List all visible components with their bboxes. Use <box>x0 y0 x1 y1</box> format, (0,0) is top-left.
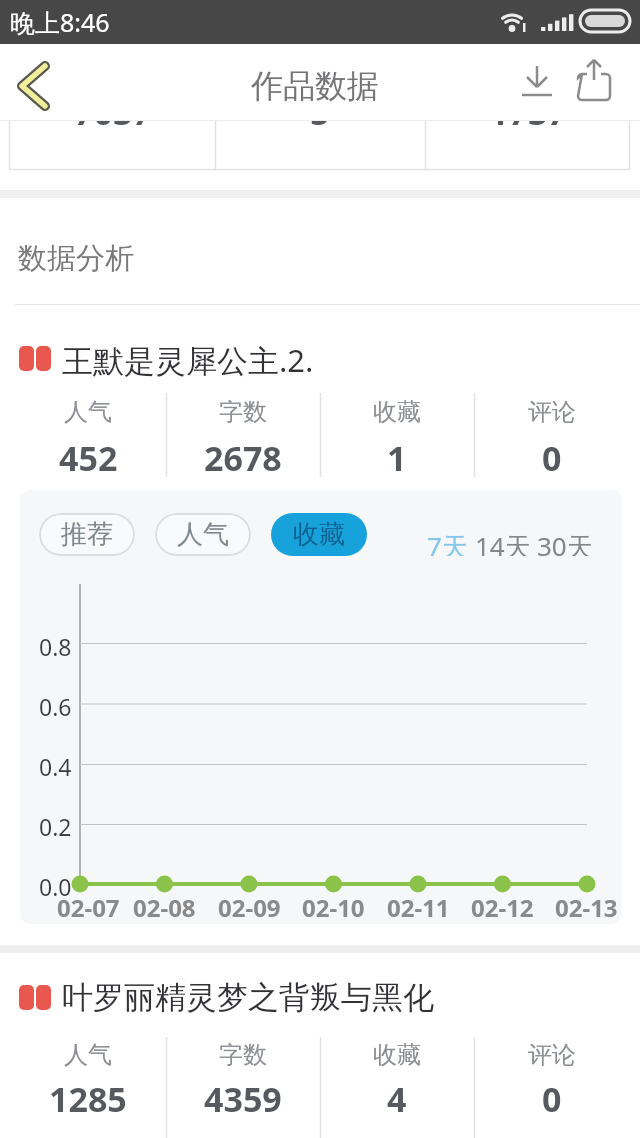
staticText: 字数 <box>219 1040 267 1068</box>
staticText: 0 <box>542 435 562 475</box>
staticText: 0.2 <box>39 811 72 837</box>
staticText: 字数 <box>219 397 267 425</box>
staticText: 0.8 <box>39 631 72 657</box>
staticText: 02-09 <box>218 891 281 917</box>
staticText: 7037 <box>74 89 152 129</box>
button[interactable] <box>0 54 70 114</box>
staticText: 评论 <box>528 397 576 425</box>
staticText: 4 <box>387 1076 407 1116</box>
staticText: 4359 <box>204 1076 282 1116</box>
button[interactable]: 14天 <box>468 528 538 556</box>
staticText: 1737 <box>489 89 567 129</box>
staticText: 作品数据 <box>251 66 379 106</box>
staticText: 叶罗丽精灵梦之背叛与黑化 <box>62 978 434 1016</box>
staticText: 02-11 <box>387 891 450 917</box>
button[interactable] <box>515 60 559 106</box>
staticText: 推荐 <box>61 518 113 551</box>
staticText: 0 <box>542 1076 562 1116</box>
staticText: 王默是灵犀公主.2. <box>62 339 314 377</box>
button[interactable]: 30天 <box>530 528 600 556</box>
staticText: 0.6 <box>39 691 72 717</box>
staticText: 人气 <box>64 1040 112 1068</box>
button[interactable]: 7天 <box>417 528 477 556</box>
staticText: 02-07 <box>57 891 120 917</box>
staticText: 14天 <box>475 528 531 556</box>
button[interactable]: 人气 <box>155 513 251 556</box>
button[interactable]: 收藏 <box>271 513 367 556</box>
staticText: 02-10 <box>302 891 365 917</box>
staticText: 收藏 <box>373 397 421 425</box>
staticText: 0.0 <box>39 871 72 897</box>
staticText: 收藏 <box>373 1040 421 1068</box>
staticText: 02-08 <box>133 891 196 917</box>
staticText: 5 <box>310 89 330 129</box>
staticText: 02-13 <box>555 891 618 917</box>
staticText: 30天 <box>537 528 593 556</box>
staticText: 人气 <box>64 397 112 425</box>
staticText: 0.4 <box>39 751 72 777</box>
staticText: 晚上8:46 <box>10 5 110 39</box>
staticText: 评论 <box>528 1040 576 1068</box>
staticText: 收藏 <box>293 518 345 551</box>
staticText: 人气 <box>177 518 229 551</box>
button[interactable]: 叶罗丽精灵梦之背叛与黑化 <box>62 978 582 1016</box>
staticText: 数据分析 <box>18 240 134 274</box>
button[interactable]: 推荐 <box>39 513 135 556</box>
staticText: 2678 <box>204 435 282 475</box>
button[interactable]: 王默是灵犀公主.2. <box>62 339 482 377</box>
staticText: 1 <box>387 435 407 475</box>
staticText: 452 <box>59 435 118 475</box>
staticText: 1285 <box>49 1076 127 1116</box>
button[interactable] <box>572 58 616 106</box>
staticText: 02-12 <box>471 891 534 917</box>
staticText: 7天 <box>427 528 468 556</box>
